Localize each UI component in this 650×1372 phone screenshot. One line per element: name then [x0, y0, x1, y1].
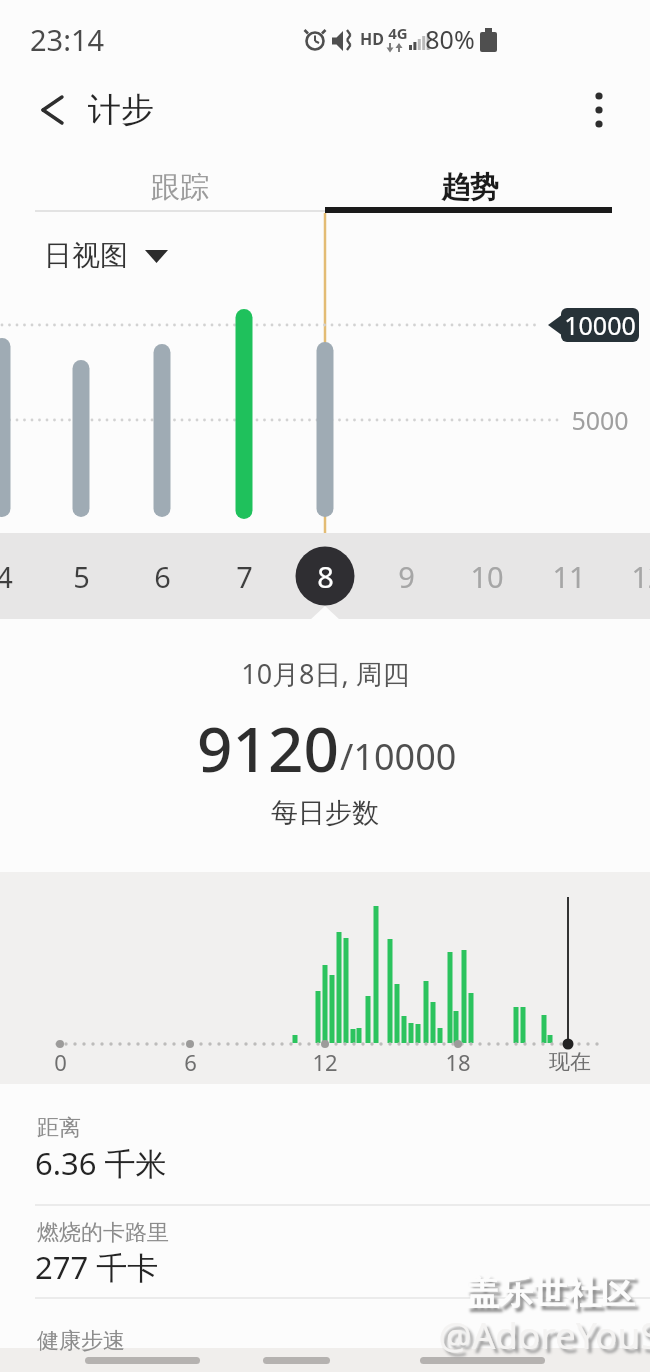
- button[interactable]: [0, 1090, 650, 1202]
- button[interactable]: [580, 88, 624, 132]
- staticText: 23:14: [30, 20, 105, 59]
- button[interactable]: 8: [295, 546, 355, 606]
- button[interactable]: [0, 1300, 650, 1372]
- staticText: 每日步数: [271, 796, 379, 830]
- staticText: 计步: [88, 89, 154, 131]
- staticText: HD: [360, 28, 384, 50]
- staticText: 10月8日, 周四: [241, 655, 410, 692]
- staticText: 6: [154, 557, 171, 596]
- staticText: @AdoreYouS: [438, 1309, 650, 1359]
- button[interactable]: [0, 1208, 650, 1296]
- staticText: 4G: [388, 23, 408, 43]
- staticText: 5: [73, 557, 90, 596]
- staticText: 9120: [197, 706, 339, 790]
- staticText: 277 千卡: [35, 1246, 159, 1288]
- button[interactable]: 跟踪: [40, 161, 320, 213]
- staticText: 距离: [37, 1114, 81, 1142]
- staticText: 6.36 千米: [35, 1142, 167, 1184]
- button[interactable]: [30, 88, 76, 134]
- staticText: 11: [552, 557, 586, 596]
- button[interactable]: 5: [51, 546, 111, 606]
- staticText: 7: [236, 557, 253, 596]
- button[interactable]: 趋势: [330, 161, 610, 213]
- staticText: 4: [0, 557, 13, 596]
- staticText: 12: [312, 1047, 338, 1077]
- button[interactable]: 7: [214, 546, 274, 606]
- staticText: 12: [631, 557, 650, 596]
- button[interactable]: 10: [457, 546, 517, 606]
- staticText: 10000: [564, 308, 636, 342]
- staticText: 9: [398, 557, 415, 596]
- staticText: 18: [445, 1047, 471, 1077]
- staticText: 跟踪: [151, 169, 209, 206]
- staticText: 燃烧的卡路里: [37, 1219, 169, 1247]
- staticText: 盖乐世社区: [465, 1271, 635, 1314]
- staticText: 80%: [425, 22, 475, 56]
- staticText: 8: [317, 557, 334, 596]
- button[interactable]: 日视图: [44, 232, 180, 278]
- staticText: 0: [54, 1047, 67, 1077]
- staticText: 现在: [549, 1049, 591, 1075]
- button[interactable]: 6: [132, 546, 192, 606]
- staticText: 10: [470, 557, 504, 596]
- staticText: 趋势: [441, 169, 499, 206]
- staticText: 5000: [571, 403, 629, 437]
- staticText: 日视图: [44, 238, 128, 273]
- button[interactable]: 11: [539, 546, 599, 606]
- button[interactable]: 9: [376, 546, 436, 606]
- button[interactable]: 4: [0, 546, 34, 606]
- staticText: /10000: [340, 732, 457, 781]
- staticText: 6: [184, 1047, 197, 1077]
- staticText: 健康步速: [37, 1327, 125, 1355]
